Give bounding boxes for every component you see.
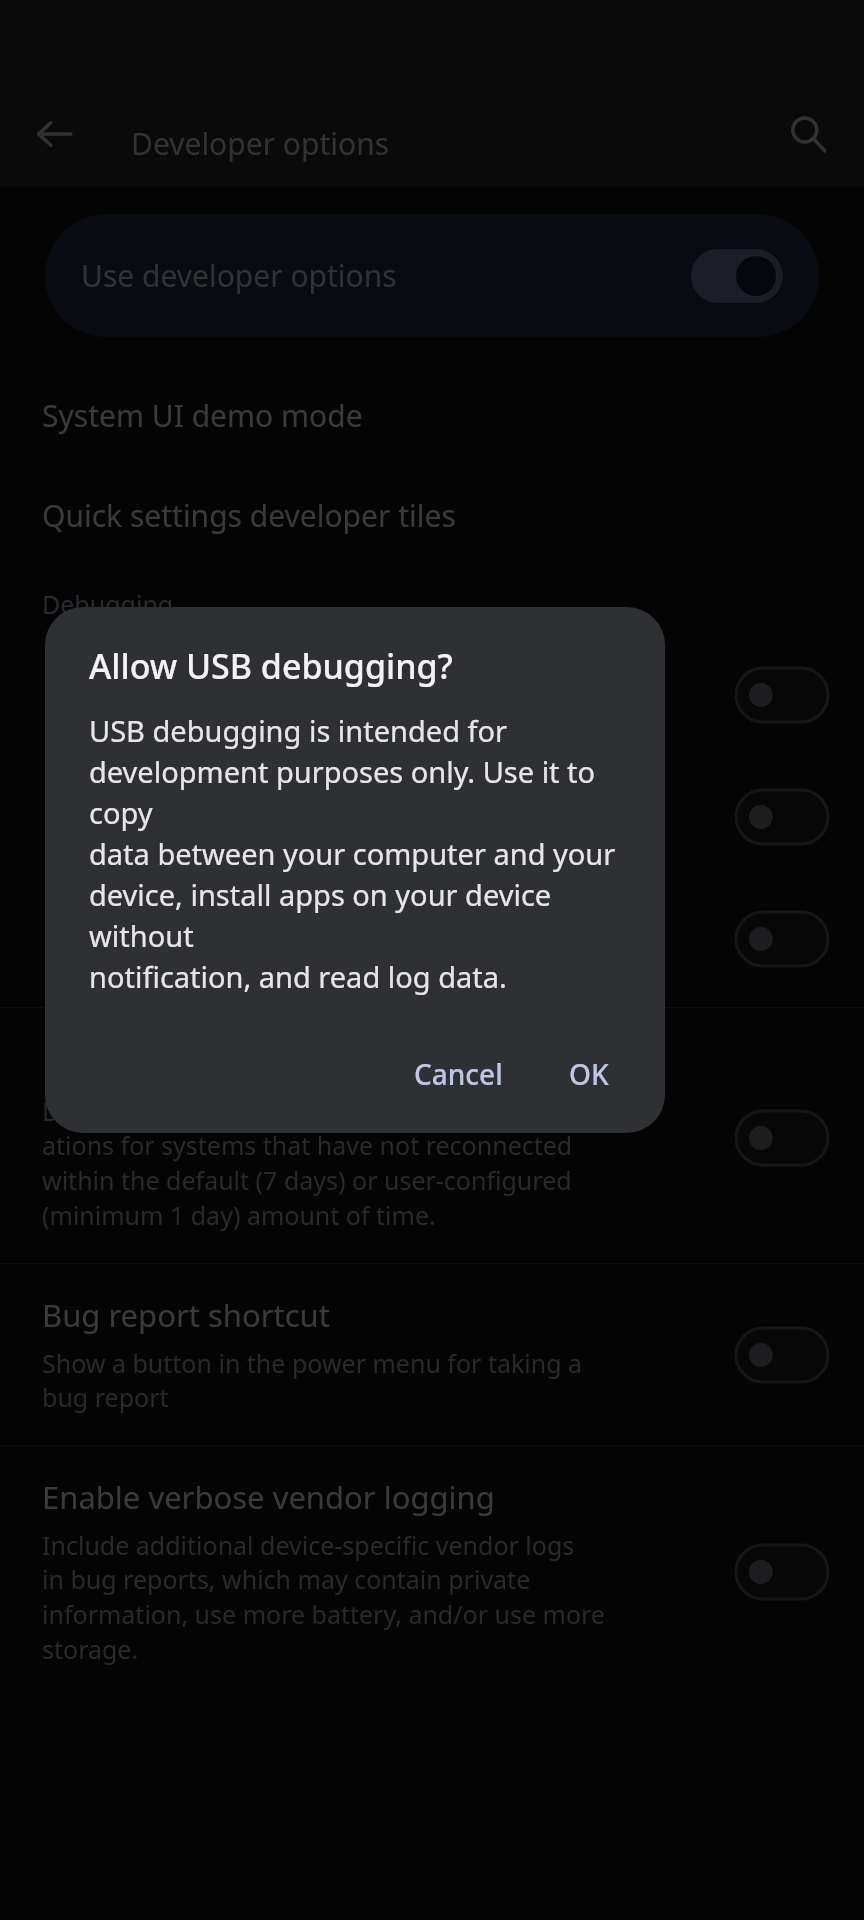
button[interactable]: [0, 667, 864, 723]
button[interactable]: Search: [772, 98, 844, 170]
staticText: Use developer options: [81, 255, 691, 296]
button[interactable]: [736, 912, 828, 966]
button[interactable]: [736, 790, 828, 844]
button[interactable]: Enable verbose vendor logging: [0, 1446, 864, 1697]
staticText: OK: [569, 1055, 609, 1093]
button[interactable]: [691, 249, 783, 303]
staticText: USB debugging is intended for developmen…: [89, 711, 631, 997]
button[interactable]: [736, 668, 828, 722]
button[interactable]: [736, 1545, 828, 1599]
button[interactable]: [0, 911, 864, 967]
button[interactable]: Use developer options: [45, 214, 819, 337]
staticText: Disable adb authorization timeout: [42, 1042, 540, 1084]
staticText: Quick settings developer tiles: [42, 495, 456, 536]
button[interactable]: Bug report shortcut: [0, 1264, 864, 1445]
staticText: Allow USB debugging?: [89, 643, 453, 689]
staticText: Debugging: [42, 587, 174, 621]
staticText: System UI demo mode: [42, 395, 363, 436]
staticText: Cancel: [414, 1055, 503, 1093]
staticText: Show a button in the power menu for taki…: [42, 1346, 583, 1415]
button[interactable]: OK: [547, 1041, 631, 1107]
button[interactable]: Cancel: [392, 1041, 525, 1107]
button[interactable]: Quick settings developer tiles: [0, 465, 864, 565]
staticText: Enable verbose vendor logging: [42, 1476, 495, 1518]
staticText: Bug report shortcut: [42, 1294, 330, 1336]
button[interactable]: Back: [18, 98, 90, 170]
staticText: Include additional device-specific vendo…: [42, 1528, 605, 1667]
button[interactable]: System UI demo mode: [0, 365, 864, 465]
button[interactable]: [0, 789, 864, 845]
button[interactable]: Disable adb authorization timeout: [0, 1008, 864, 1263]
button[interactable]: [736, 1111, 828, 1165]
button[interactable]: [736, 1328, 828, 1382]
staticText: Developer options: [131, 123, 390, 164]
staticText: Disable automatic revocation of adb auth…: [42, 1094, 578, 1233]
